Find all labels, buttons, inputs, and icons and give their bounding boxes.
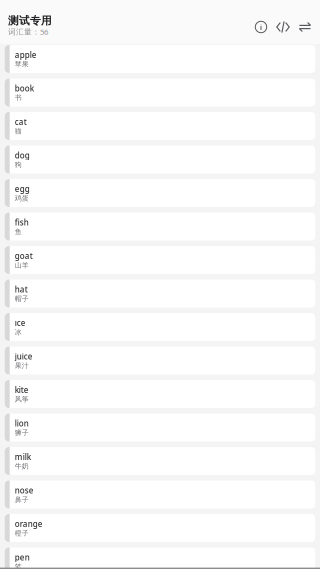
staticText: 词汇量：56 bbox=[8, 26, 48, 37]
staticText: 牛奶 bbox=[15, 462, 29, 470]
staticText: 冰 bbox=[15, 328, 22, 336]
staticText: hat bbox=[15, 284, 28, 295]
staticText: apple bbox=[15, 49, 37, 60]
staticText: 笔 bbox=[15, 562, 22, 569]
button[interactable]: egg bbox=[5, 179, 315, 207]
button[interactable]: Swap languages bbox=[298, 20, 312, 34]
staticText: 鸡蛋 bbox=[15, 194, 29, 202]
button[interactable]: book bbox=[5, 78, 315, 106]
staticText: fish bbox=[15, 217, 29, 228]
button[interactable]: goat bbox=[5, 246, 315, 274]
staticText: dog bbox=[15, 150, 30, 161]
button[interactable]: kite bbox=[5, 380, 315, 408]
staticText: lion bbox=[15, 418, 29, 429]
staticText: 山羊 bbox=[15, 261, 29, 269]
button[interactable]: Source code bbox=[276, 20, 290, 34]
button[interactable]: nose bbox=[5, 480, 315, 508]
button[interactable]: fish bbox=[5, 212, 315, 240]
staticText: 橙子 bbox=[15, 529, 29, 537]
staticText: 猫 bbox=[15, 127, 22, 135]
staticText: 测试专用 bbox=[8, 14, 52, 27]
button[interactable]: milk bbox=[5, 447, 315, 475]
staticText: milk bbox=[15, 451, 31, 462]
staticText: egg bbox=[15, 183, 30, 194]
button[interactable]: lion bbox=[5, 413, 315, 441]
button[interactable]: hat bbox=[5, 279, 315, 307]
staticText: 狮子 bbox=[15, 428, 29, 437]
button[interactable]: dog bbox=[5, 145, 315, 173]
staticText: pen bbox=[15, 552, 30, 563]
button[interactable]: orange bbox=[5, 514, 315, 542]
staticText: 帽子 bbox=[15, 294, 29, 303]
staticText: book bbox=[15, 83, 34, 94]
staticText: 书 bbox=[15, 93, 22, 102]
staticText: 风筝 bbox=[15, 395, 29, 403]
button[interactable]: cat bbox=[5, 112, 315, 140]
staticText: 苹果 bbox=[15, 60, 29, 68]
staticText: 狗 bbox=[15, 160, 22, 169]
button[interactable]: juice bbox=[5, 346, 315, 374]
button[interactable]: ice bbox=[5, 313, 315, 341]
button[interactable]: apple bbox=[5, 45, 315, 73]
button[interactable]: pen bbox=[5, 547, 315, 569]
button[interactable]: Info bbox=[254, 20, 268, 34]
staticText: 果汁 bbox=[15, 361, 29, 370]
staticText: goat bbox=[15, 250, 33, 261]
staticText: nose bbox=[15, 485, 34, 496]
staticText: juice bbox=[15, 351, 33, 362]
staticText: kite bbox=[15, 384, 29, 395]
staticText: orange bbox=[15, 518, 43, 529]
staticText: ice bbox=[15, 317, 26, 328]
staticText: 鱼 bbox=[15, 227, 22, 236]
staticText: 鼻子 bbox=[15, 495, 29, 504]
staticText: cat bbox=[15, 116, 27, 127]
